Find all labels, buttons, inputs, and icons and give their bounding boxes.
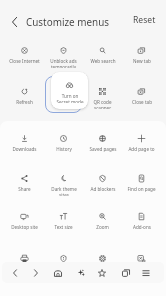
button[interactable]: New tab <box>122 44 161 68</box>
staticText: Dark theme sites <box>51 186 77 196</box>
button[interactable]: Desktop site <box>5 210 44 234</box>
staticText: History <box>56 146 72 152</box>
button[interactable]: Turn on Secret mode <box>51 72 88 109</box>
button[interactable]: History <box>44 132 83 156</box>
button[interactable] <box>122 252 161 276</box>
button[interactable]: Refresh <box>5 85 44 109</box>
staticText: Refresh <box>16 99 33 105</box>
button[interactable]: QR code scanner <box>83 85 122 109</box>
button[interactable]: Downloads <box>5 132 44 156</box>
staticText: New tab <box>133 58 151 64</box>
staticText: Add-ons <box>133 224 151 230</box>
staticText: Reset <box>133 14 156 26</box>
button[interactable]: home <box>48 263 68 282</box>
staticText: Web search <box>90 58 116 64</box>
button[interactable]: sparkle <box>71 263 91 282</box>
staticText: Customize menus <box>26 15 110 28</box>
button[interactable]: tabs <box>116 263 136 282</box>
button[interactable]: Text size <box>44 210 83 234</box>
button[interactable]: Close tab <box>122 85 161 109</box>
staticText: Unblock ads temporarily <box>50 58 77 68</box>
button[interactable]: Ad blockers <box>83 172 122 196</box>
button[interactable]: bookmark <box>92 263 112 282</box>
staticText: Saved pages <box>89 146 117 152</box>
button[interactable] <box>5 252 44 276</box>
staticText: Add page to <box>128 146 155 152</box>
button[interactable]: Unblock ads temporarily <box>44 44 83 68</box>
button[interactable]: Zoom <box>83 210 122 234</box>
staticText: Find on page <box>127 186 156 192</box>
button[interactable]: Web search <box>83 44 122 68</box>
button[interactable]: Reset <box>123 10 166 30</box>
staticText: Ad blockers <box>90 186 116 192</box>
button[interactable]: Share <box>5 172 44 196</box>
staticText: Share <box>18 186 31 192</box>
button[interactable] <box>83 252 122 276</box>
staticText: Downloads <box>12 146 37 152</box>
staticText: Close Internet <box>9 58 40 64</box>
staticText: QR code scanner <box>93 99 112 109</box>
staticText: Close tab <box>132 99 152 105</box>
button[interactable]: Add page to <box>122 132 161 156</box>
staticText: Desktop site <box>11 224 38 230</box>
button[interactable]: back <box>5 263 25 282</box>
staticText: Zoom <box>96 224 109 230</box>
button[interactable]: Find on page <box>122 172 161 196</box>
button[interactable]: Close Internet <box>5 44 44 68</box>
button[interactable]: menu <box>136 263 156 282</box>
staticText: Text size <box>54 224 73 230</box>
button[interactable]: Saved pages <box>83 132 122 156</box>
button[interactable] <box>44 252 83 276</box>
staticText: Turn on Secret mode <box>56 93 84 103</box>
button[interactable]: Add-ons <box>122 210 161 234</box>
button[interactable]: Back <box>4 11 25 32</box>
button[interactable]: forward <box>26 263 46 282</box>
button[interactable]: Dark theme sites <box>44 172 83 196</box>
